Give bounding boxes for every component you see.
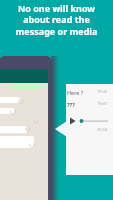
button[interactable]: ???: [67, 101, 75, 108]
button[interactable]: Play voice message: [66, 114, 113, 128]
staticText: 19:35: [97, 89, 108, 94]
staticText: 20:04: [97, 127, 108, 132]
staticText: No one will know about read the message …: [0, 2, 113, 38]
staticText: ???: [67, 101, 75, 108]
staticText: Here ?: [67, 89, 84, 96]
button[interactable]: Here ?: [67, 89, 84, 96]
staticText: 19:41: [97, 101, 108, 106]
